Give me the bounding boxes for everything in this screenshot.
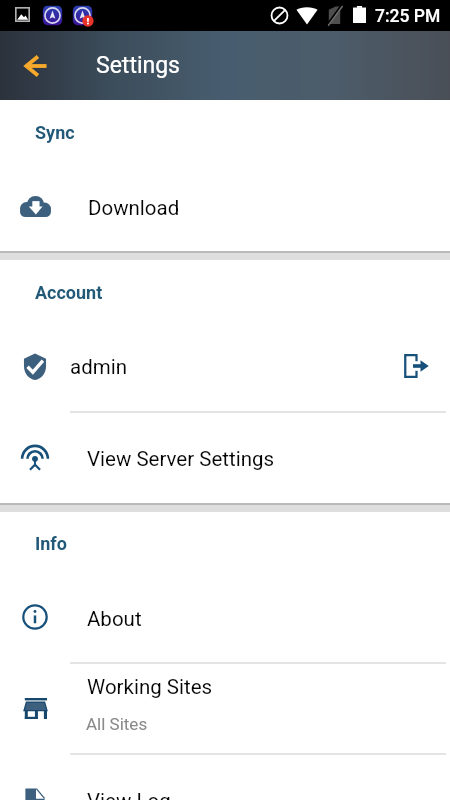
button[interactable]: About xyxy=(0,578,410,656)
button[interactable]: Download xyxy=(0,167,410,245)
button[interactable]: admin xyxy=(0,327,380,405)
staticText: All Sites xyxy=(86,714,148,734)
staticText: Settings xyxy=(96,52,180,79)
staticText: Account xyxy=(35,282,103,303)
staticText: View Log xyxy=(87,789,171,800)
button[interactable]: Working Sites xyxy=(0,669,410,747)
staticText: Download xyxy=(88,196,180,220)
button[interactable]: View Log xyxy=(0,761,410,800)
button[interactable]: Log out xyxy=(392,342,440,390)
button[interactable]: Navigate up xyxy=(8,38,64,94)
staticText: admin xyxy=(70,355,127,379)
button[interactable]: View Server Settings xyxy=(0,418,410,496)
staticText: Working Sites xyxy=(87,675,213,699)
staticText: View Server Settings xyxy=(87,447,275,471)
staticText: About xyxy=(87,607,142,631)
staticText: Info xyxy=(35,533,67,554)
staticText: Sync xyxy=(35,122,75,143)
staticText: 7:25 PM xyxy=(375,6,441,27)
